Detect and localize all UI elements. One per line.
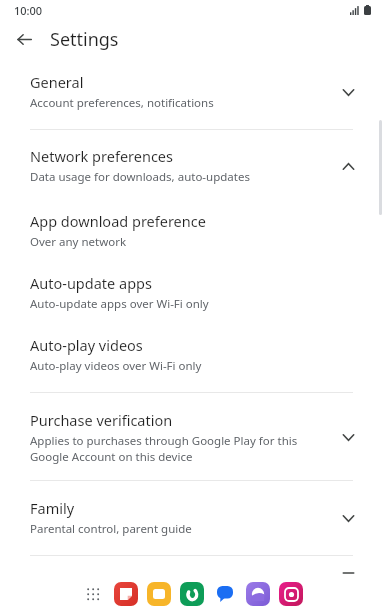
staticText: App download preference [30,211,206,231]
button[interactable]: General [0,58,383,129]
staticText: Over any network [30,234,127,250]
other: Expand [335,79,361,105]
button[interactable]: Messages [212,581,238,607]
button[interactable]: Network preferences [0,130,383,195]
button[interactable]: Camera [278,581,304,607]
other: Expand [335,505,361,531]
button[interactable]: Family [0,481,383,555]
button[interactable]: Back [6,21,42,57]
button[interactable]: Auto-update apps [0,250,383,312]
button[interactable]: Assistant [245,581,271,607]
staticText: Auto-update apps over Wi-Fi only [30,296,209,312]
staticText: Auto-play videos over Wi-Fi only [30,358,202,374]
button[interactable]: App download preference [0,195,383,250]
button[interactable]: Keep [113,581,139,607]
staticText: Network preferences [30,146,173,166]
staticText: Family [30,498,75,518]
button[interactable]: Phone [179,581,205,607]
button[interactable]: Files [146,581,172,607]
staticText: Parental control, parent guide [30,521,192,537]
staticText: Auto-update apps [30,273,152,293]
button[interactable]: About [0,556,383,590]
staticText: Settings [50,27,119,52]
button[interactable]: All apps [80,581,106,607]
staticText: 10:00 [14,3,43,18]
staticText: Auto-play videos [30,335,143,355]
other: Expand [335,424,361,450]
button[interactable]: Auto-play videos [0,312,383,374]
button[interactable]: Purchase verification [0,393,383,480]
staticText: Applies to purchases through Google Play… [30,433,329,464]
staticText: General [30,72,84,92]
staticText: Data usage for downloads, auto-updates [30,169,250,185]
staticText: Purchase verification [30,410,173,430]
staticText: Account preferences, notifications [30,95,214,111]
other: Collapse [335,153,361,179]
